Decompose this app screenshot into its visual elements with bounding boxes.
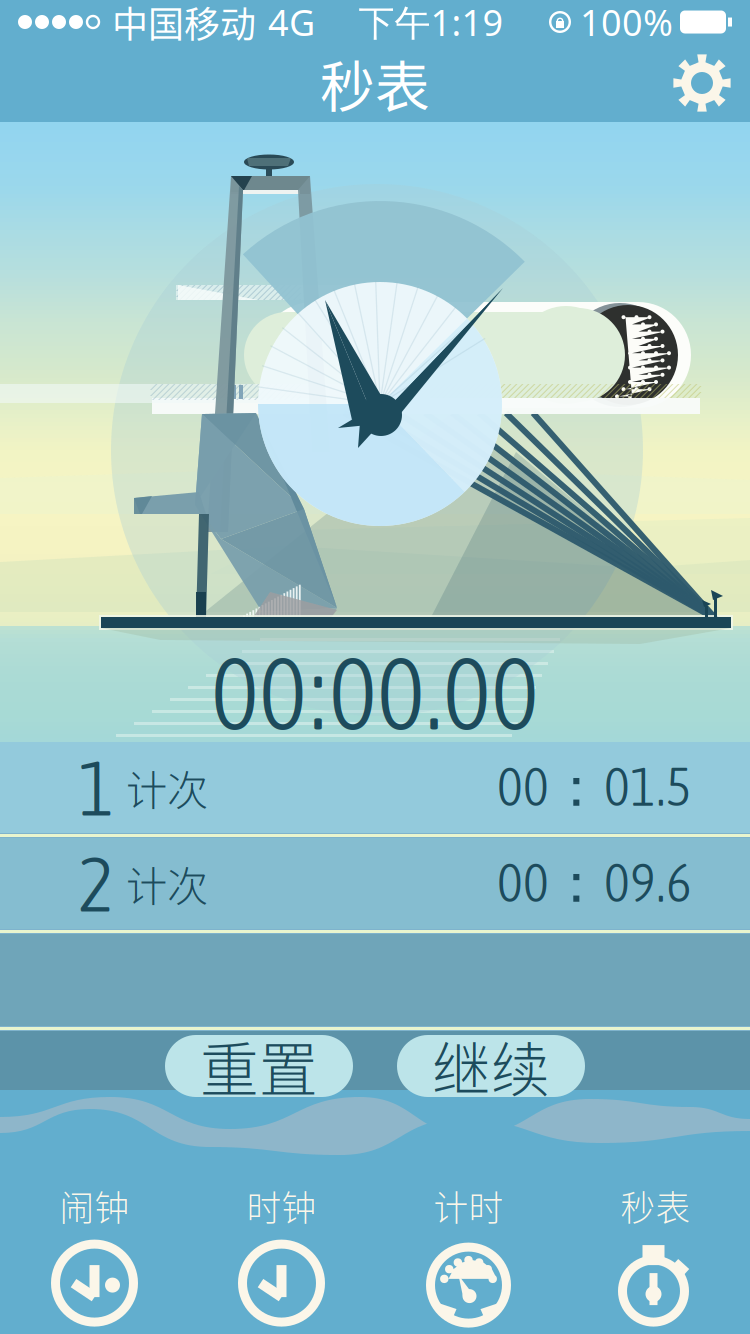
button[interactable]: 2 xyxy=(0,838,750,929)
staticText: 00：09.6 xyxy=(497,849,692,918)
button[interactable]: 闹钟 xyxy=(1,1174,188,1334)
staticText: 时钟 xyxy=(246,1181,316,1231)
button[interactable]: 时钟 xyxy=(188,1174,375,1334)
staticText: 计次 xyxy=(126,854,208,913)
staticText: 继续 xyxy=(432,1023,550,1108)
staticText: 100% xyxy=(580,0,673,46)
button[interactable]: 继续 xyxy=(397,1035,585,1097)
staticText: 重置 xyxy=(200,1023,318,1108)
button[interactable]: 1 xyxy=(0,742,750,833)
button[interactable]: 秒表 xyxy=(562,1174,749,1334)
staticText: 秒表 xyxy=(320,43,430,123)
staticText: 闹钟 xyxy=(59,1181,129,1231)
button[interactable]: 计时 xyxy=(375,1174,562,1334)
staticText: 00：01.5 xyxy=(497,753,692,822)
button[interactable]: 设置 xyxy=(654,44,750,122)
staticText: 4G xyxy=(268,0,315,46)
staticText: 计时 xyxy=(433,1181,503,1231)
staticText: 秒表 xyxy=(620,1181,690,1231)
staticText: 1 xyxy=(78,743,114,832)
staticText: 中国移动 xyxy=(112,0,256,48)
staticText: 下午1:19 xyxy=(358,0,503,46)
staticText: 计次 xyxy=(126,758,208,817)
staticText: 00:00.00 xyxy=(211,635,539,751)
button[interactable]: 重置 xyxy=(165,1035,353,1097)
staticText: 2 xyxy=(78,839,114,928)
